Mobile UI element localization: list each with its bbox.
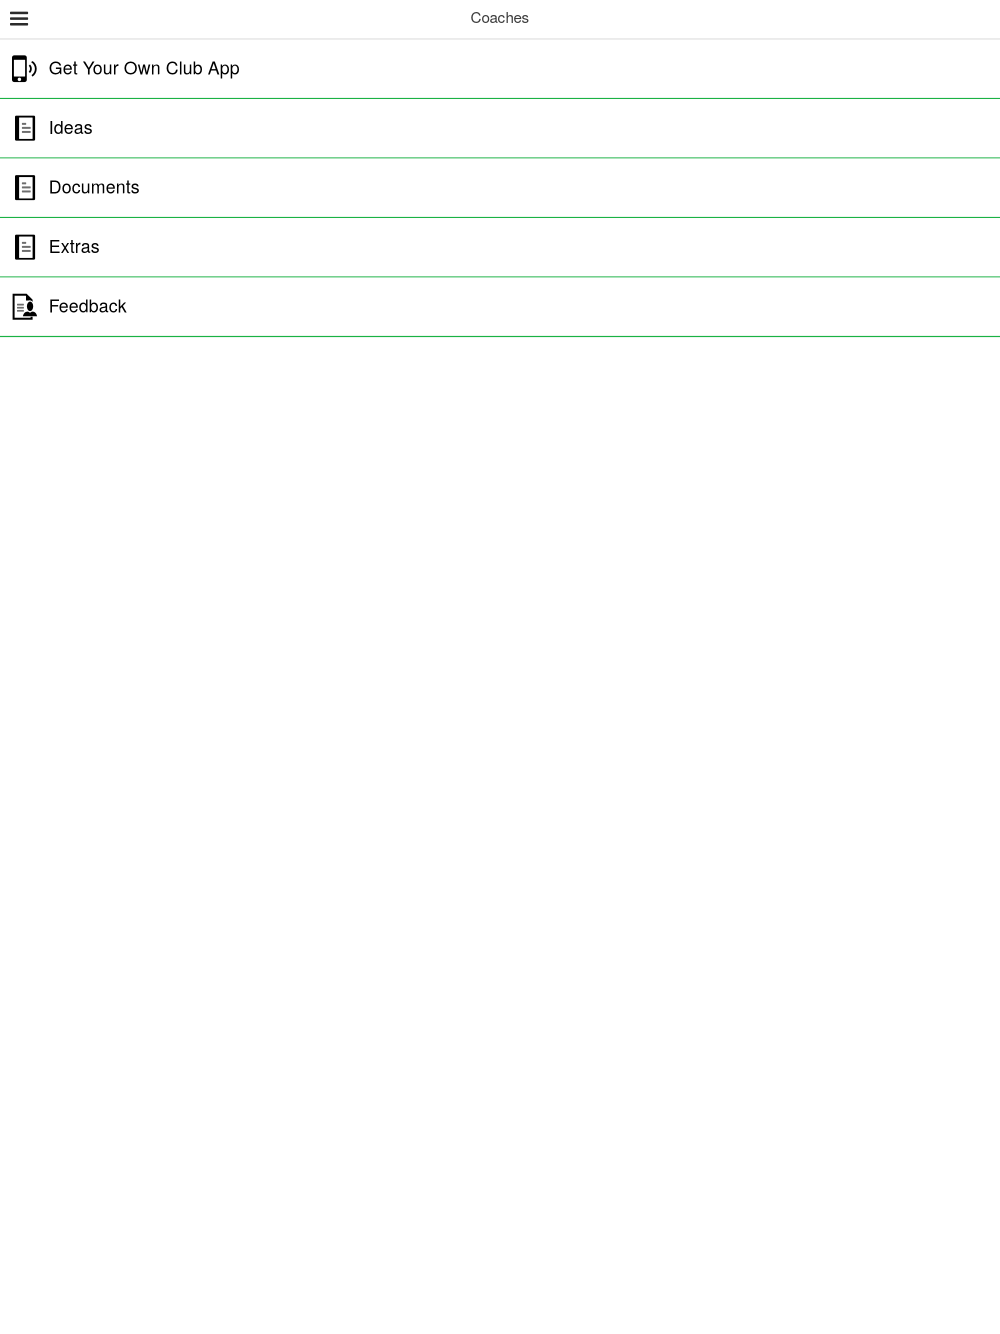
button[interactable]: Feedback [0,278,1000,337]
button[interactable]: Ideas [0,99,1000,159]
staticText: Ideas [49,114,93,139]
button[interactable]: Documents [0,159,1000,218]
staticText: Feedback [49,292,127,318]
button[interactable]: Get Your Own Club App [0,40,1000,99]
staticText: Get Your Own Club App [49,54,240,80]
button[interactable]: Extras [0,218,1000,278]
staticText: Documents [49,173,140,199]
staticText: Coaches [470,5,529,27]
staticText: Extras [49,233,100,258]
button[interactable]: Menu [0,1,40,37]
